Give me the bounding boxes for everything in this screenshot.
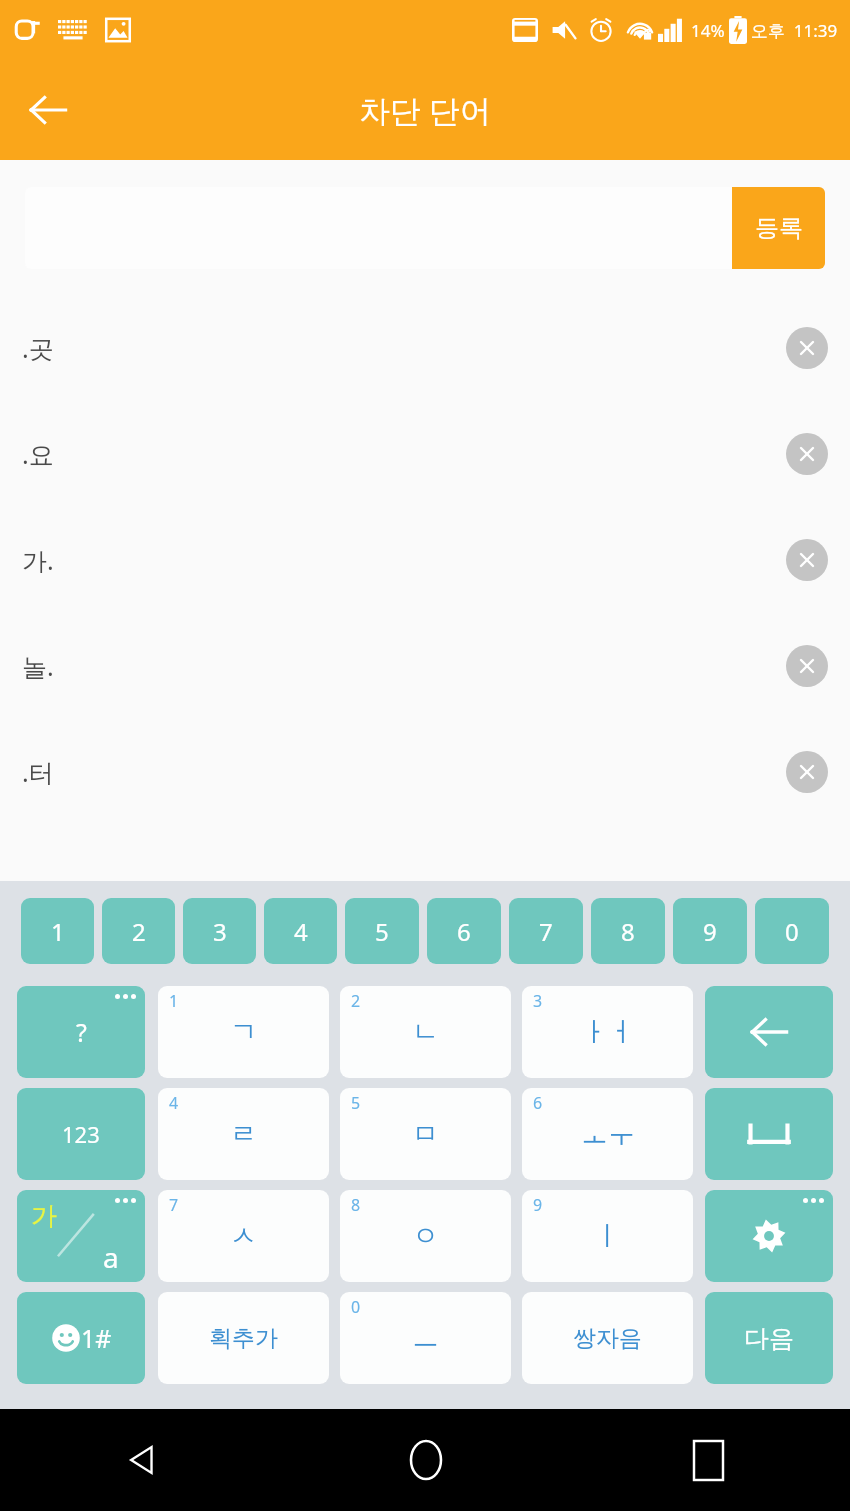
staticText: 가. [22,543,54,577]
button[interactable]: 123 [17,1088,145,1180]
staticText: ㅅ [230,1219,257,1253]
staticText: 다음 [744,1323,794,1354]
button[interactable]: .요 [0,401,850,507]
button[interactable]: 6 [427,898,501,964]
button[interactable]: Back [18,80,78,140]
button[interactable]: .터 [0,719,850,825]
staticText: a [103,1238,119,1276]
staticText: ㄴ [412,1015,439,1049]
staticText: .곳 [22,331,54,365]
button[interactable]: Back [0,1409,284,1511]
staticText: 7 [169,1194,179,1216]
staticText: 5 [375,915,389,948]
staticText: 0 [351,1296,361,1318]
staticText: 4 [294,915,308,948]
button[interactable]: 9 [673,898,747,964]
button[interactable]: Settings [705,1190,833,1282]
staticText: 7 [539,915,553,948]
staticText: .터 [22,755,54,789]
staticText: 1 [169,990,179,1012]
button[interactable]: Emoji [17,1292,145,1384]
button[interactable]: 다음 [705,1292,833,1384]
button[interactable]: 4 [158,1088,329,1180]
staticText: ㄹ [230,1117,257,1151]
button[interactable]: Delete [786,433,828,475]
staticText: 차단 단어 [359,89,492,131]
staticText: 9 [533,1194,543,1216]
button[interactable]: .곳 [0,295,850,401]
button[interactable]: 획추가 [158,1292,329,1384]
button[interactable]: 9 [522,1190,693,1282]
staticText: ㅏㅓ [581,1015,635,1049]
button[interactable]: 0 [340,1292,511,1384]
button[interactable]: 가. [0,507,850,613]
staticText: 123 [62,1119,100,1149]
button[interactable]: 1 [158,986,329,1078]
button[interactable]: 2 [102,898,175,964]
button[interactable]: 4 [264,898,337,964]
staticText: 6 [457,915,471,948]
button[interactable]: Delete [786,645,828,687]
staticText: ? [76,1015,87,1049]
button[interactable]: 8 [340,1190,511,1282]
button[interactable]: 3 [522,986,693,1078]
button[interactable]: Delete [786,751,828,793]
button[interactable]: ? [17,986,145,1078]
staticText: 오후 11:39 [751,19,838,42]
button[interactable]: 5 [340,1088,511,1180]
button[interactable]: Space [705,1088,833,1180]
button[interactable]: Recent apps [567,1409,850,1511]
button[interactable]: 0 [755,898,829,964]
button[interactable]: 3 [183,898,256,964]
staticText: 쌍자음 [573,1324,642,1353]
staticText: ㅡ [412,1321,439,1355]
staticText: 4 [169,1092,179,1114]
button[interactable]: 8 [591,898,665,964]
staticText: 6 [533,1092,543,1114]
button[interactable]: Delete [786,539,828,581]
staticText: ㄱ [230,1015,257,1049]
button[interactable]: Backspace [705,986,833,1078]
staticText: ㅣ [594,1219,621,1253]
button[interactable]: 7 [509,898,583,964]
staticText: 8 [351,1194,361,1216]
staticText: 3 [533,990,543,1012]
button[interactable]: Home [284,1409,567,1511]
staticText: 1 [51,915,65,948]
button[interactable]: Language toggle [17,1190,145,1282]
staticText: 가 [31,1200,57,1233]
button[interactable]: 놀. [0,613,850,719]
button[interactable]: 등록 [732,187,825,269]
staticText: 2 [351,990,361,1012]
staticText: 놀. [22,649,54,683]
staticText: .요 [22,437,54,471]
staticText: 1# [81,1321,112,1355]
button[interactable]: 1 [21,898,94,964]
button[interactable]: 2 [340,986,511,1078]
staticText: 등록 [755,213,803,243]
button[interactable]: Delete [786,327,828,369]
staticText: 9 [703,915,717,948]
staticText: 5 [351,1092,361,1114]
staticText: 2 [132,915,146,948]
staticText: ㅗㅜ [581,1117,635,1151]
staticText: ㅇ [412,1219,439,1253]
button[interactable]: 5 [345,898,419,964]
staticText: 8 [621,915,635,948]
staticText: ㅁ [412,1117,439,1151]
staticText: 3 [213,915,227,948]
staticText: 획추가 [209,1324,278,1353]
staticText: 14% [691,19,725,42]
staticText: 0 [785,915,799,948]
button[interactable]: 7 [158,1190,329,1282]
button[interactable]: 6 [522,1088,693,1180]
button[interactable]: 쌍자음 [522,1292,693,1384]
